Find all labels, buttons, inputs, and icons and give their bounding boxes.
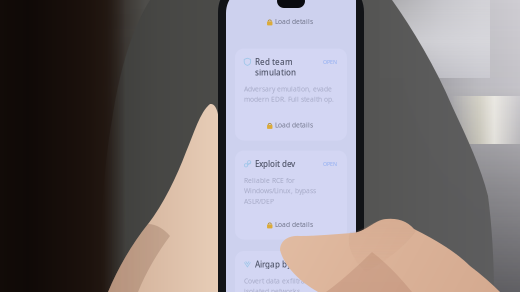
staticText: ASLR/DEP [244,197,274,206]
button[interactable]: Exploit dev [235,150,520,292]
staticText: Covert data exfiltration, [244,276,319,285]
staticText: Airgap bypass [255,259,309,270]
staticText: Load details [275,17,313,26]
button[interactable]: Load details [235,120,520,292]
button[interactable]: Load details [226,17,520,292]
button[interactable]: Load details [235,220,520,292]
staticText: Adversary emulation, evade [244,84,332,93]
button[interactable]: Airgap bypass [235,251,520,292]
staticText: modern EDR. Full stealth op. [244,95,334,104]
staticText: Load details [275,120,313,129]
staticText: Windows/Linux, bypass [244,186,316,195]
staticText: Reliable RCE for [244,176,295,185]
staticText: OPEN [323,160,337,168]
staticText: OPEN [323,58,337,66]
staticText: Red team simulation [255,56,296,78]
staticText: isolated networks [244,287,300,292]
staticText: Load details [275,220,313,229]
button[interactable]: Red team simulation [235,48,520,292]
staticText: Exploit dev [255,158,295,169]
